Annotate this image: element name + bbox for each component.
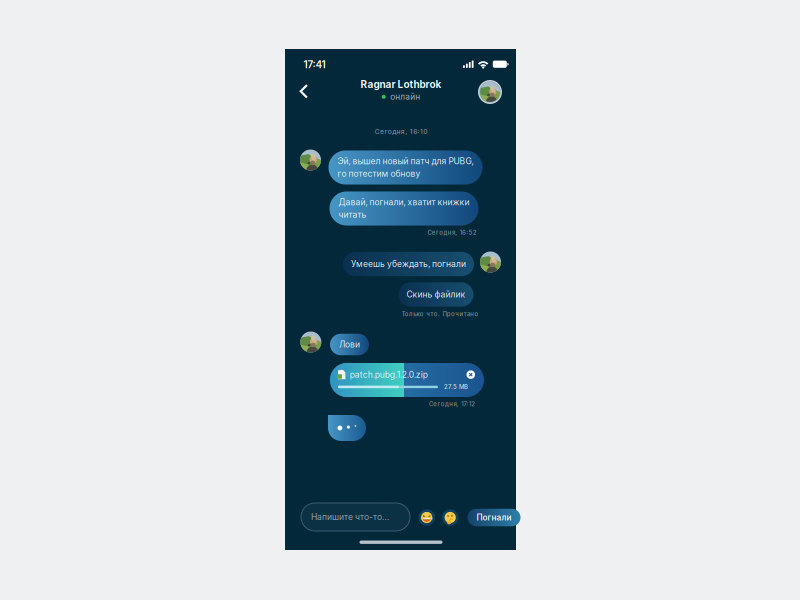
staticText: читать (338, 210, 366, 220)
button[interactable]: Thinking emoji (442, 509, 458, 526)
staticText: 27.5 MB (444, 383, 468, 391)
button[interactable]: Скинь файлик (398, 282, 473, 307)
button[interactable]: Давай, погнали, хватит книжки (329, 191, 478, 226)
button[interactable]: Эй, вышел новый патч для PUBG, (328, 150, 482, 185)
staticText: Эй, вышел новый патч для PUBG, (337, 156, 473, 166)
staticText: 17:41 (303, 58, 325, 71)
button[interactable]: Умеешь убеждать, погнали (343, 252, 474, 276)
button[interactable]: Back (291, 78, 317, 104)
staticText: Сегодня, 16:10 (375, 127, 427, 136)
staticText: Ragnar Lothbrok (360, 78, 441, 90)
staticText: Только что. Прочитано (401, 310, 478, 318)
button[interactable]: Contact profile (478, 80, 502, 104)
button[interactable]: patch.pubg.1.2.0.zip (330, 363, 484, 397)
staticText: patch.pubg.1.2.0.zip (350, 369, 428, 380)
staticText: Погнали (476, 512, 511, 522)
staticText: Напишите что-то… (311, 512, 389, 522)
staticText: го потестим обнову (337, 169, 420, 179)
button[interactable]: Laughing emoji (418, 509, 435, 526)
staticText: Умеешь убеждать, погнали (351, 259, 466, 269)
staticText: Сегодня, 16:52 (427, 229, 477, 236)
staticText: Давай, погнали, хватит книжки (338, 197, 469, 207)
staticText: Скинь файлик (406, 289, 465, 300)
button[interactable]: Погнали (467, 509, 520, 526)
staticText: Сегодня, 17:12 (429, 400, 475, 408)
staticText: Лови (339, 339, 360, 350)
button[interactable]: Напишите что-то… (301, 503, 410, 531)
staticText: онлайн (390, 92, 420, 102)
button[interactable]: Лови (330, 334, 369, 355)
